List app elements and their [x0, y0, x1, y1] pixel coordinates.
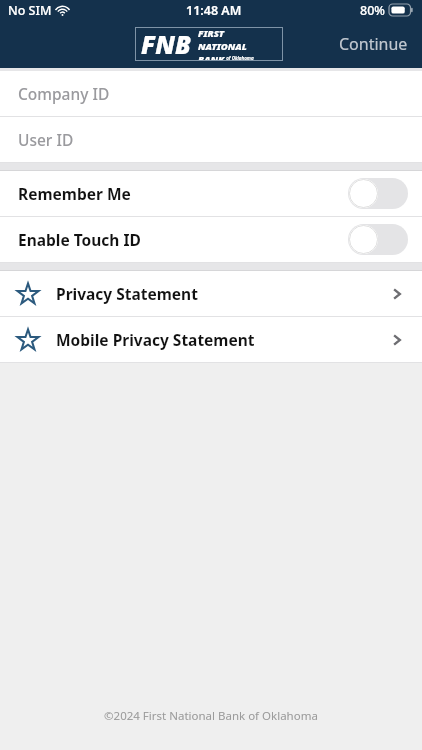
- staticText: of Oklahoma: [225, 55, 254, 61]
- button[interactable]: Continue: [325, 27, 422, 61]
- staticText: Enable Touch ID: [18, 229, 141, 250]
- other: Open: [388, 285, 406, 303]
- other: Toggle off: [348, 178, 408, 209]
- staticText: FNB: [141, 27, 191, 61]
- staticText: 11:48 AM: [186, 2, 242, 19]
- staticText: Mobile Privacy Statement: [56, 329, 255, 350]
- other: Toggle off: [348, 224, 408, 255]
- staticText: NATIONAL: [198, 40, 247, 53]
- button[interactable]: Mobile Privacy Statement: [0, 317, 422, 362]
- button[interactable]: Enable Touch ID: [0, 217, 422, 262]
- staticText: ©2024 First National Bank of Oklahoma: [104, 708, 318, 724]
- button[interactable]: First National Bank of Oklahoma: [135, 27, 283, 61]
- staticText: Company ID: [18, 83, 110, 104]
- button[interactable]: Company ID: [0, 71, 422, 116]
- button[interactable]: User ID: [0, 117, 422, 162]
- staticText: FIRST: [198, 27, 225, 40]
- staticText: Privacy Statement: [56, 283, 198, 304]
- other: Open: [388, 331, 406, 349]
- staticText: No SIM: [8, 2, 52, 19]
- staticText: BANK: [198, 53, 225, 61]
- staticText: Remember Me: [18, 183, 131, 204]
- button[interactable]: Remember Me: [0, 171, 422, 216]
- staticText: User ID: [18, 129, 74, 150]
- staticText: Continue: [339, 33, 408, 55]
- button[interactable]: Privacy Statement: [0, 271, 422, 316]
- staticText: 80%: [360, 2, 385, 19]
